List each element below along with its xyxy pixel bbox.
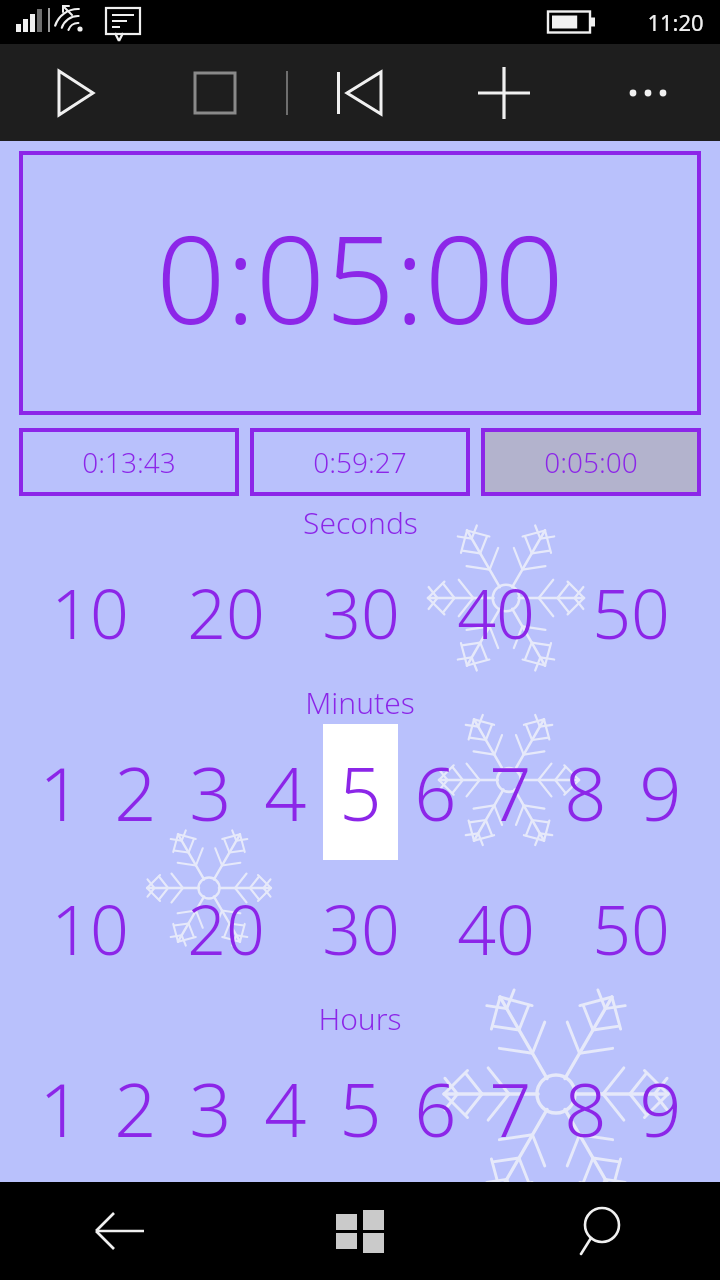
staticText: 5: [339, 1058, 382, 1159]
button[interactable]: 5: [323, 1040, 398, 1176]
button[interactable]: 50: [563, 860, 698, 996]
staticText: 3: [189, 742, 232, 843]
staticText: 20: [187, 882, 265, 975]
staticText: 40: [457, 882, 535, 975]
button[interactable]: 4: [248, 1040, 323, 1176]
button[interactable]: Reset timer: [288, 44, 432, 141]
button[interactable]: 4: [248, 724, 323, 860]
button[interactable]: Stop timer: [143, 44, 286, 141]
staticText: 7: [489, 1058, 532, 1159]
button[interactable]: 40: [428, 544, 563, 680]
button[interactable]: 8: [548, 724, 623, 860]
staticText: 3: [189, 1058, 232, 1159]
button[interactable]: 2: [98, 1040, 173, 1176]
staticText: 9: [639, 1058, 682, 1159]
staticText: 5: [339, 742, 382, 843]
button[interactable]: 50: [563, 544, 698, 680]
button[interactable]: 10: [22, 860, 158, 996]
button[interactable]: 6: [398, 1040, 473, 1176]
staticText: 2: [114, 742, 157, 843]
staticText: Minutes: [305, 682, 415, 723]
button[interactable]: Add preset: [432, 44, 576, 141]
button[interactable]: 3: [173, 1040, 248, 1176]
button[interactable]: 9: [623, 724, 698, 860]
button[interactable]: 6: [398, 724, 473, 860]
staticText: 8: [564, 1058, 607, 1159]
staticText: 8: [564, 742, 607, 843]
staticText: 11:20: [647, 7, 704, 37]
staticText: 0:05:00: [156, 194, 564, 360]
button[interactable]: 10: [22, 544, 158, 680]
staticText: Seconds: [303, 502, 418, 543]
staticText: Hours: [318, 998, 402, 1039]
button[interactable]: Search: [480, 1182, 720, 1280]
staticText: 10: [51, 882, 129, 975]
button[interactable]: 30: [293, 544, 428, 680]
button[interactable]: 5: [323, 724, 398, 860]
button[interactable]: 20: [158, 544, 293, 680]
button[interactable]: Start timer: [0, 44, 143, 141]
staticText: 0:59:27: [313, 443, 407, 481]
button[interactable]: 2: [98, 724, 173, 860]
button[interactable]: 7: [473, 1040, 548, 1176]
button[interactable]: Back: [0, 1182, 240, 1280]
staticText: 10: [51, 566, 129, 659]
staticText: 20: [187, 566, 265, 659]
button[interactable]: 40: [428, 860, 563, 996]
staticText: 50: [592, 566, 670, 659]
staticText: 1: [39, 1058, 82, 1159]
staticText: 4: [264, 1058, 307, 1159]
button[interactable]: 30: [293, 860, 428, 996]
button[interactable]: 9: [623, 1040, 698, 1176]
button[interactable]: 3: [173, 724, 248, 860]
staticText: 4: [264, 742, 307, 843]
button[interactable]: 20: [158, 860, 293, 996]
button[interactable]: 0:05:00: [481, 428, 701, 496]
staticText: 30: [322, 882, 400, 975]
button[interactable]: 1: [22, 1040, 98, 1176]
staticText: 50: [592, 882, 670, 975]
staticText: 7: [489, 742, 532, 843]
staticText: 9: [639, 742, 682, 843]
staticText: 1: [39, 742, 82, 843]
button[interactable]: 0:05:00: [19, 151, 701, 415]
button[interactable]: 0:59:27: [250, 428, 470, 496]
button[interactable]: 7: [473, 724, 548, 860]
staticText: 2: [114, 1058, 157, 1159]
staticText: 6: [414, 1058, 457, 1159]
staticText: 0:05:00: [544, 443, 638, 481]
button[interactable]: 8: [548, 1040, 623, 1176]
button[interactable]: 1: [22, 724, 98, 860]
button[interactable]: More options: [576, 44, 720, 141]
button[interactable]: Home: [240, 1182, 480, 1280]
button[interactable]: 0:13:43: [19, 428, 239, 496]
staticText: 40: [457, 566, 535, 659]
staticText: 30: [322, 566, 400, 659]
staticText: 0:13:43: [82, 443, 176, 481]
staticText: 6: [414, 742, 457, 843]
